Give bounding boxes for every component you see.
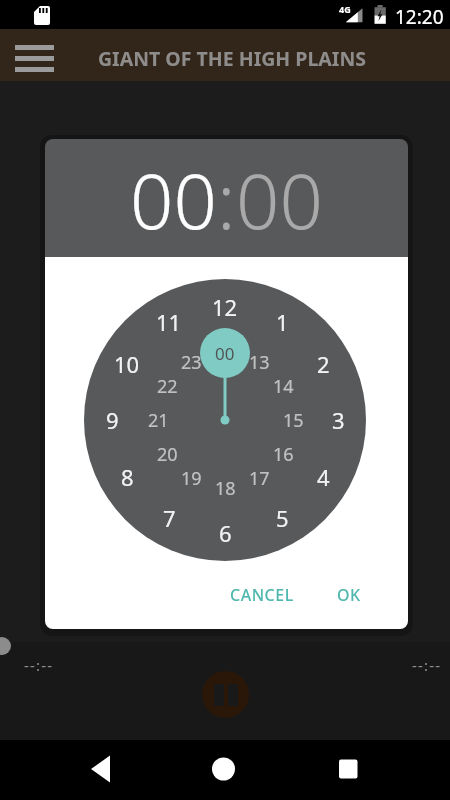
staticText: 00 bbox=[215, 342, 235, 365]
staticText: 3 bbox=[332, 405, 345, 435]
staticText: 9 bbox=[106, 405, 119, 435]
button[interactable]: OK bbox=[314, 575, 384, 615]
staticText: 14 bbox=[273, 374, 294, 399]
staticText: 19 bbox=[181, 466, 202, 491]
button[interactable] bbox=[0, 740, 150, 800]
button[interactable]: CANCEL bbox=[207, 575, 317, 615]
staticText: OK bbox=[337, 584, 361, 606]
staticText: 6 bbox=[219, 518, 232, 548]
staticText: 5 bbox=[276, 503, 289, 533]
staticText: 4 bbox=[317, 462, 330, 492]
staticText: --:-- bbox=[24, 655, 54, 675]
staticText: 1 bbox=[276, 307, 289, 337]
staticText: --:-- bbox=[412, 655, 442, 675]
staticText: 7 bbox=[163, 503, 176, 533]
button[interactable] bbox=[150, 740, 300, 800]
staticText: 10 bbox=[114, 349, 140, 379]
button[interactable] bbox=[300, 740, 450, 800]
staticText: 22 bbox=[157, 374, 178, 399]
staticText: 23 bbox=[181, 350, 202, 375]
staticText: 2 bbox=[317, 349, 330, 379]
staticText: 12 bbox=[212, 292, 238, 322]
staticText: 20 bbox=[157, 442, 178, 467]
staticText: 15 bbox=[283, 408, 304, 433]
staticText: 16 bbox=[273, 442, 294, 467]
button[interactable] bbox=[202, 671, 249, 718]
button[interactable] bbox=[15, 29, 55, 81]
staticText: 8 bbox=[121, 462, 134, 492]
staticText: 13 bbox=[249, 350, 270, 375]
staticText: 12:20 bbox=[395, 4, 444, 30]
staticText: 21 bbox=[148, 408, 169, 433]
staticText: : bbox=[217, 148, 236, 252]
staticText: 4G bbox=[339, 3, 351, 15]
staticText: 11 bbox=[156, 307, 182, 337]
staticText: 00 bbox=[130, 148, 217, 252]
staticText: CANCEL bbox=[230, 584, 294, 606]
staticText: 18 bbox=[215, 476, 236, 501]
staticText: GIANT OF THE HIGH PLAINS bbox=[98, 45, 367, 72]
staticText: 00 bbox=[236, 148, 323, 252]
staticText: 17 bbox=[249, 466, 270, 491]
